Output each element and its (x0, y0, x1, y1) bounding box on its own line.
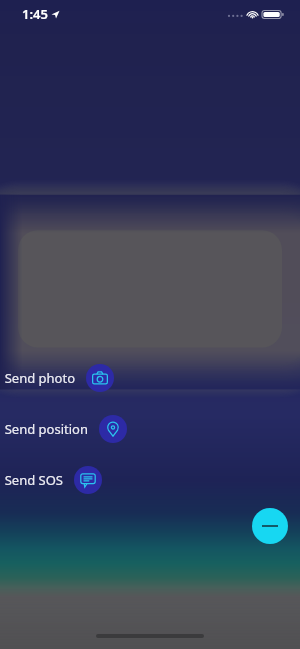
button[interactable]: Close menu (252, 508, 288, 544)
button[interactable]: Send position (0, 413, 131, 445)
button[interactable]: Send photo (0, 362, 118, 394)
button[interactable]: Send SOS (0, 464, 106, 496)
staticText: 1:45 (22, 5, 48, 23)
staticText: Send photo (4, 369, 75, 387)
staticText: Send SOS (4, 471, 63, 489)
staticText: Send position (4, 420, 88, 438)
